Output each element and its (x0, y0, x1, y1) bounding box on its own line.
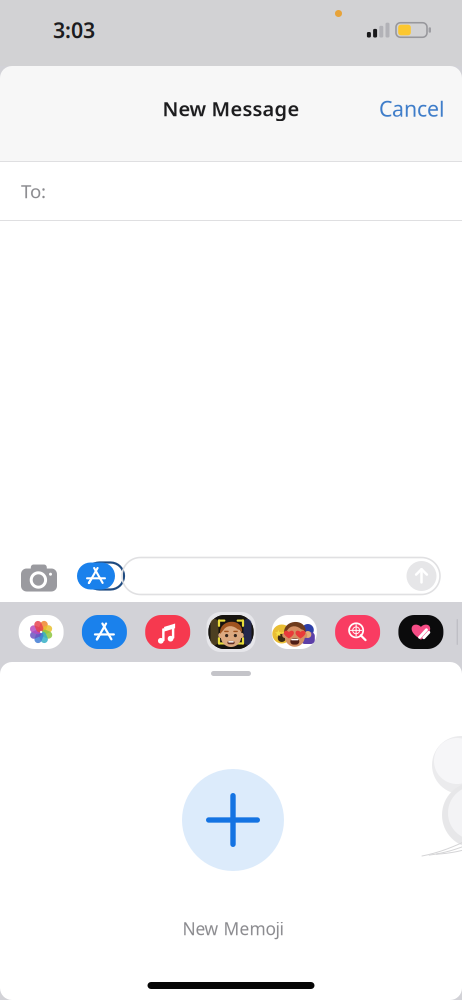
staticText: New Message (162, 95, 299, 122)
button[interactable]: Digital Touch (398, 612, 443, 652)
button[interactable]: Send (404, 559, 438, 593)
button[interactable]: Memoji Stickers (272, 612, 317, 652)
button[interactable]: Memoji (208, 612, 253, 652)
button[interactable]: Apps (72, 555, 122, 596)
button[interactable]: New Memoji (180, 769, 282, 940)
button[interactable]: Music (145, 612, 190, 652)
button[interactable]: Images (335, 612, 380, 652)
button[interactable]: Camera (0, 555, 72, 596)
staticText: To: (21, 179, 46, 203)
staticText: 3:03 (53, 16, 95, 44)
staticText: Cancel (379, 94, 445, 123)
staticText: New Memoji (182, 917, 283, 940)
button[interactable]: App Store (82, 612, 127, 652)
button[interactable]: Cancel (359, 78, 462, 139)
button[interactable]: Photos (19, 612, 64, 652)
